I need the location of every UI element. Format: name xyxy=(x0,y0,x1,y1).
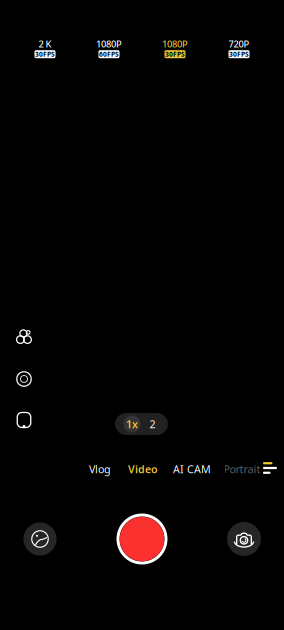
button[interactable]: Video xyxy=(128,458,158,480)
button[interactable]: Portrait xyxy=(223,458,260,480)
staticText: 2 K xyxy=(38,38,51,50)
staticText: 30FPS xyxy=(229,50,249,59)
staticText: 1080P xyxy=(96,38,122,50)
button[interactable]: Vlog xyxy=(89,458,111,480)
button[interactable]: 2 K xyxy=(17,37,73,59)
button[interactable]: 1x xyxy=(123,415,140,432)
staticText: 2 xyxy=(149,417,155,431)
button[interactable]: Aspect ratio xyxy=(9,405,39,435)
staticText: 30FPS xyxy=(165,50,185,59)
staticText: Portrait xyxy=(223,462,260,476)
button[interactable]: Switch camera xyxy=(227,522,261,556)
staticText: Vlog xyxy=(89,462,111,476)
button[interactable]: 2 xyxy=(145,415,159,432)
button[interactable]: Record xyxy=(114,511,170,567)
button[interactable]: Beauty xyxy=(9,322,39,352)
button[interactable]: 1080P xyxy=(81,37,137,59)
button[interactable]: More modes xyxy=(263,457,284,479)
staticText: 720P xyxy=(228,38,249,50)
staticText: Video xyxy=(128,462,158,476)
staticText: 60FPS xyxy=(99,50,119,59)
button[interactable]: 720P xyxy=(211,37,267,59)
staticText: AI CAM xyxy=(173,462,211,476)
staticText: 1080P xyxy=(162,38,188,50)
staticText: 30FPS xyxy=(35,50,55,59)
staticText: 1x xyxy=(126,417,138,431)
button[interactable]: Gallery xyxy=(23,522,56,555)
button[interactable]: Filters xyxy=(9,364,39,394)
button[interactable]: 1080P xyxy=(147,37,203,59)
button[interactable]: AI CAM xyxy=(173,458,211,480)
